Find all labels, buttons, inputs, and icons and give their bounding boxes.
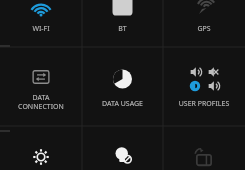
staticText: DATA USAGE — [84, 99, 161, 109]
button[interactable]: Wi-Fi — [0, 0, 82, 47]
button[interactable]: Data connection — [0, 47, 82, 126]
button[interactable]: Brightness — [0, 126, 82, 170]
button[interactable]: Bluetooth — [82, 0, 163, 47]
staticText: GPS — [165, 24, 243, 34]
button[interactable]: Flashlight — [82, 126, 163, 170]
button[interactable]: GPS — [163, 0, 245, 47]
staticText: USER PROFILES — [165, 99, 243, 109]
staticText: DATA CONNECTION — [2, 93, 80, 111]
staticText: BT — [84, 24, 161, 34]
button[interactable]: User profiles — [163, 47, 245, 126]
staticText: WI-FI — [2, 24, 80, 34]
button[interactable]: Rotation lock — [163, 126, 245, 170]
button[interactable]: Data usage — [82, 47, 163, 126]
